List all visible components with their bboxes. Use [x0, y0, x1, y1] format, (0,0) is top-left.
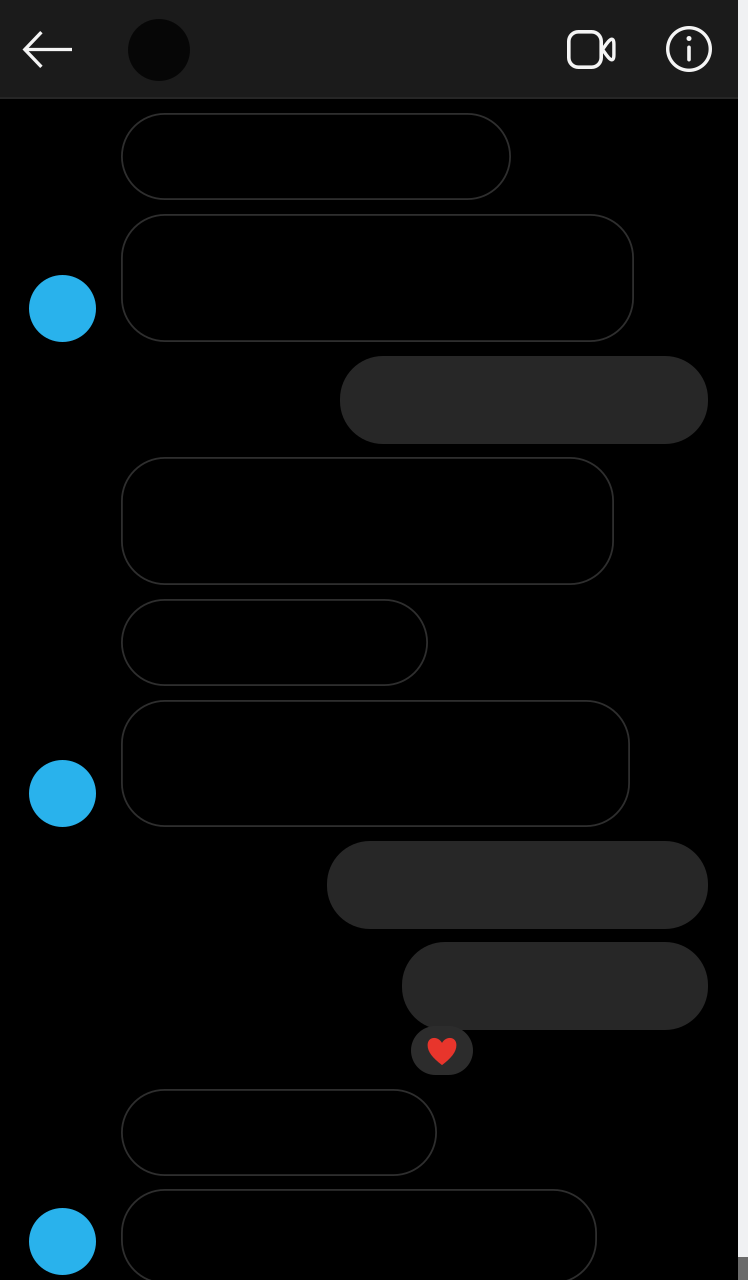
button[interactable]: Video call — [557, 20, 626, 79]
button[interactable]: Message from them — [121, 457, 614, 585]
button[interactable]: Message from them — [121, 599, 428, 686]
button[interactable]: Message from them — [121, 1189, 597, 1280]
button[interactable]: Back — [13, 21, 82, 78]
button[interactable]: Message from them — [121, 700, 630, 827]
button[interactable]: Profile — [128, 19, 190, 81]
button[interactable]: Message from you — [402, 942, 708, 1030]
button[interactable]: Message from them — [121, 214, 634, 342]
button[interactable]: Message from you — [340, 356, 708, 444]
button[interactable]: Heart reaction — [411, 1026, 473, 1075]
button[interactable]: Message from them — [121, 113, 511, 200]
button[interactable]: Message from you — [327, 841, 708, 929]
button[interactable]: Conversation information — [656, 16, 722, 82]
button[interactable]: Message from them — [121, 1089, 437, 1176]
